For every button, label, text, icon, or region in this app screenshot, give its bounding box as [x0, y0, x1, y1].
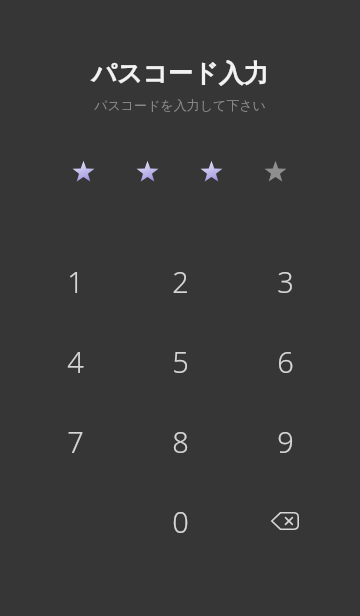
button[interactable]: Delete — [255, 481, 315, 561]
button[interactable]: 3 — [255, 241, 315, 321]
button[interactable]: 8 — [150, 401, 210, 481]
staticText: 1 — [67, 262, 84, 301]
staticText: 0 — [172, 502, 189, 541]
staticText: 2 — [172, 262, 189, 301]
staticText: パスコード入力 — [0, 58, 360, 89]
button[interactable]: 5 — [150, 321, 210, 401]
button[interactable]: 1 — [45, 241, 105, 321]
button[interactable]: 9 — [255, 401, 315, 481]
button[interactable]: 0 — [150, 481, 210, 561]
staticText: 9 — [277, 422, 294, 461]
staticText: パスコードを入力して下さい — [0, 97, 360, 113]
button[interactable]: 4 — [45, 321, 105, 401]
staticText: 7 — [67, 422, 84, 461]
staticText: 6 — [277, 342, 294, 381]
staticText: 8 — [172, 422, 189, 461]
staticText: 3 — [277, 262, 294, 301]
button[interactable]: 2 — [150, 241, 210, 321]
button[interactable]: 7 — [45, 401, 105, 481]
staticText: 5 — [172, 342, 189, 381]
staticText: 4 — [67, 342, 84, 381]
button[interactable]: 6 — [255, 321, 315, 401]
